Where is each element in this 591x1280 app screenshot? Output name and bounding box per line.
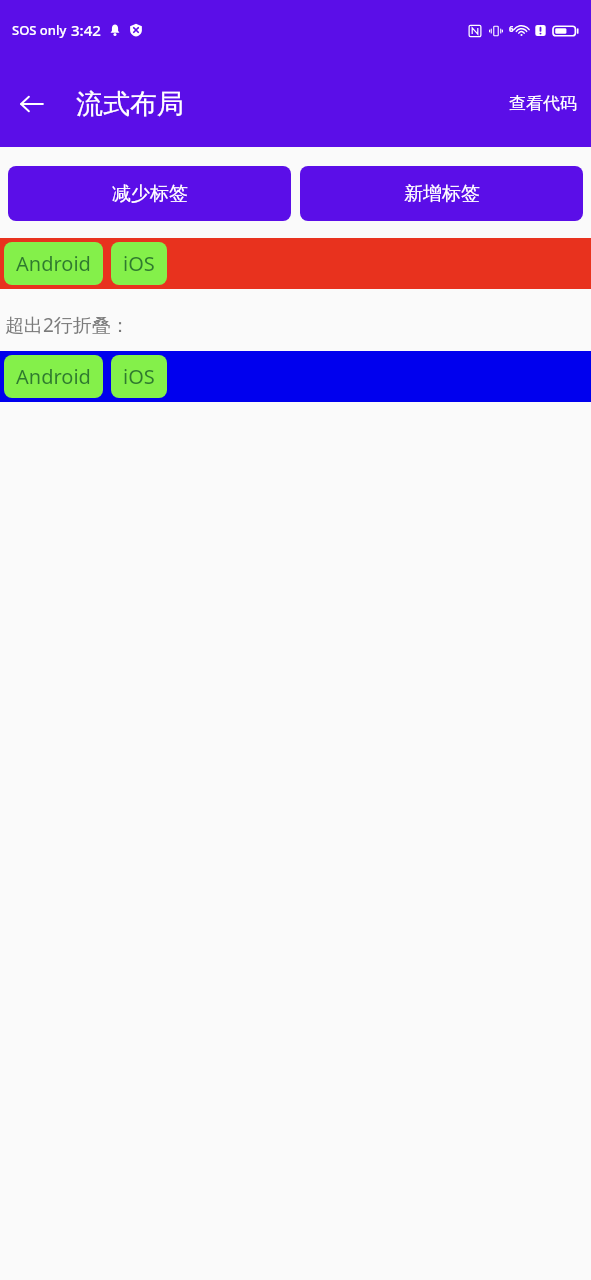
staticText: 减少标签	[112, 182, 188, 206]
staticText: Android	[16, 250, 91, 277]
staticText: Android	[16, 363, 91, 390]
staticText: iOS	[123, 363, 155, 390]
staticText: 流式布局	[76, 87, 184, 121]
staticText: 6	[509, 23, 514, 34]
staticText: 超出2行折叠：	[5, 312, 130, 338]
staticText: 查看代码	[509, 93, 577, 114]
button[interactable]: 减少标签	[8, 166, 291, 221]
button[interactable]: Back	[8, 80, 56, 128]
button[interactable]: 查看代码	[495, 83, 591, 124]
button[interactable]: Android	[4, 242, 103, 285]
button[interactable]: 新增标签	[300, 166, 583, 221]
button[interactable]: Android	[4, 355, 103, 398]
staticText: SOS only	[12, 21, 67, 39]
button[interactable]: iOS	[111, 355, 167, 398]
staticText: 新增标签	[404, 182, 480, 206]
button[interactable]: iOS	[111, 242, 167, 285]
staticText: iOS	[123, 250, 155, 277]
staticText: 3:42	[71, 20, 101, 40]
